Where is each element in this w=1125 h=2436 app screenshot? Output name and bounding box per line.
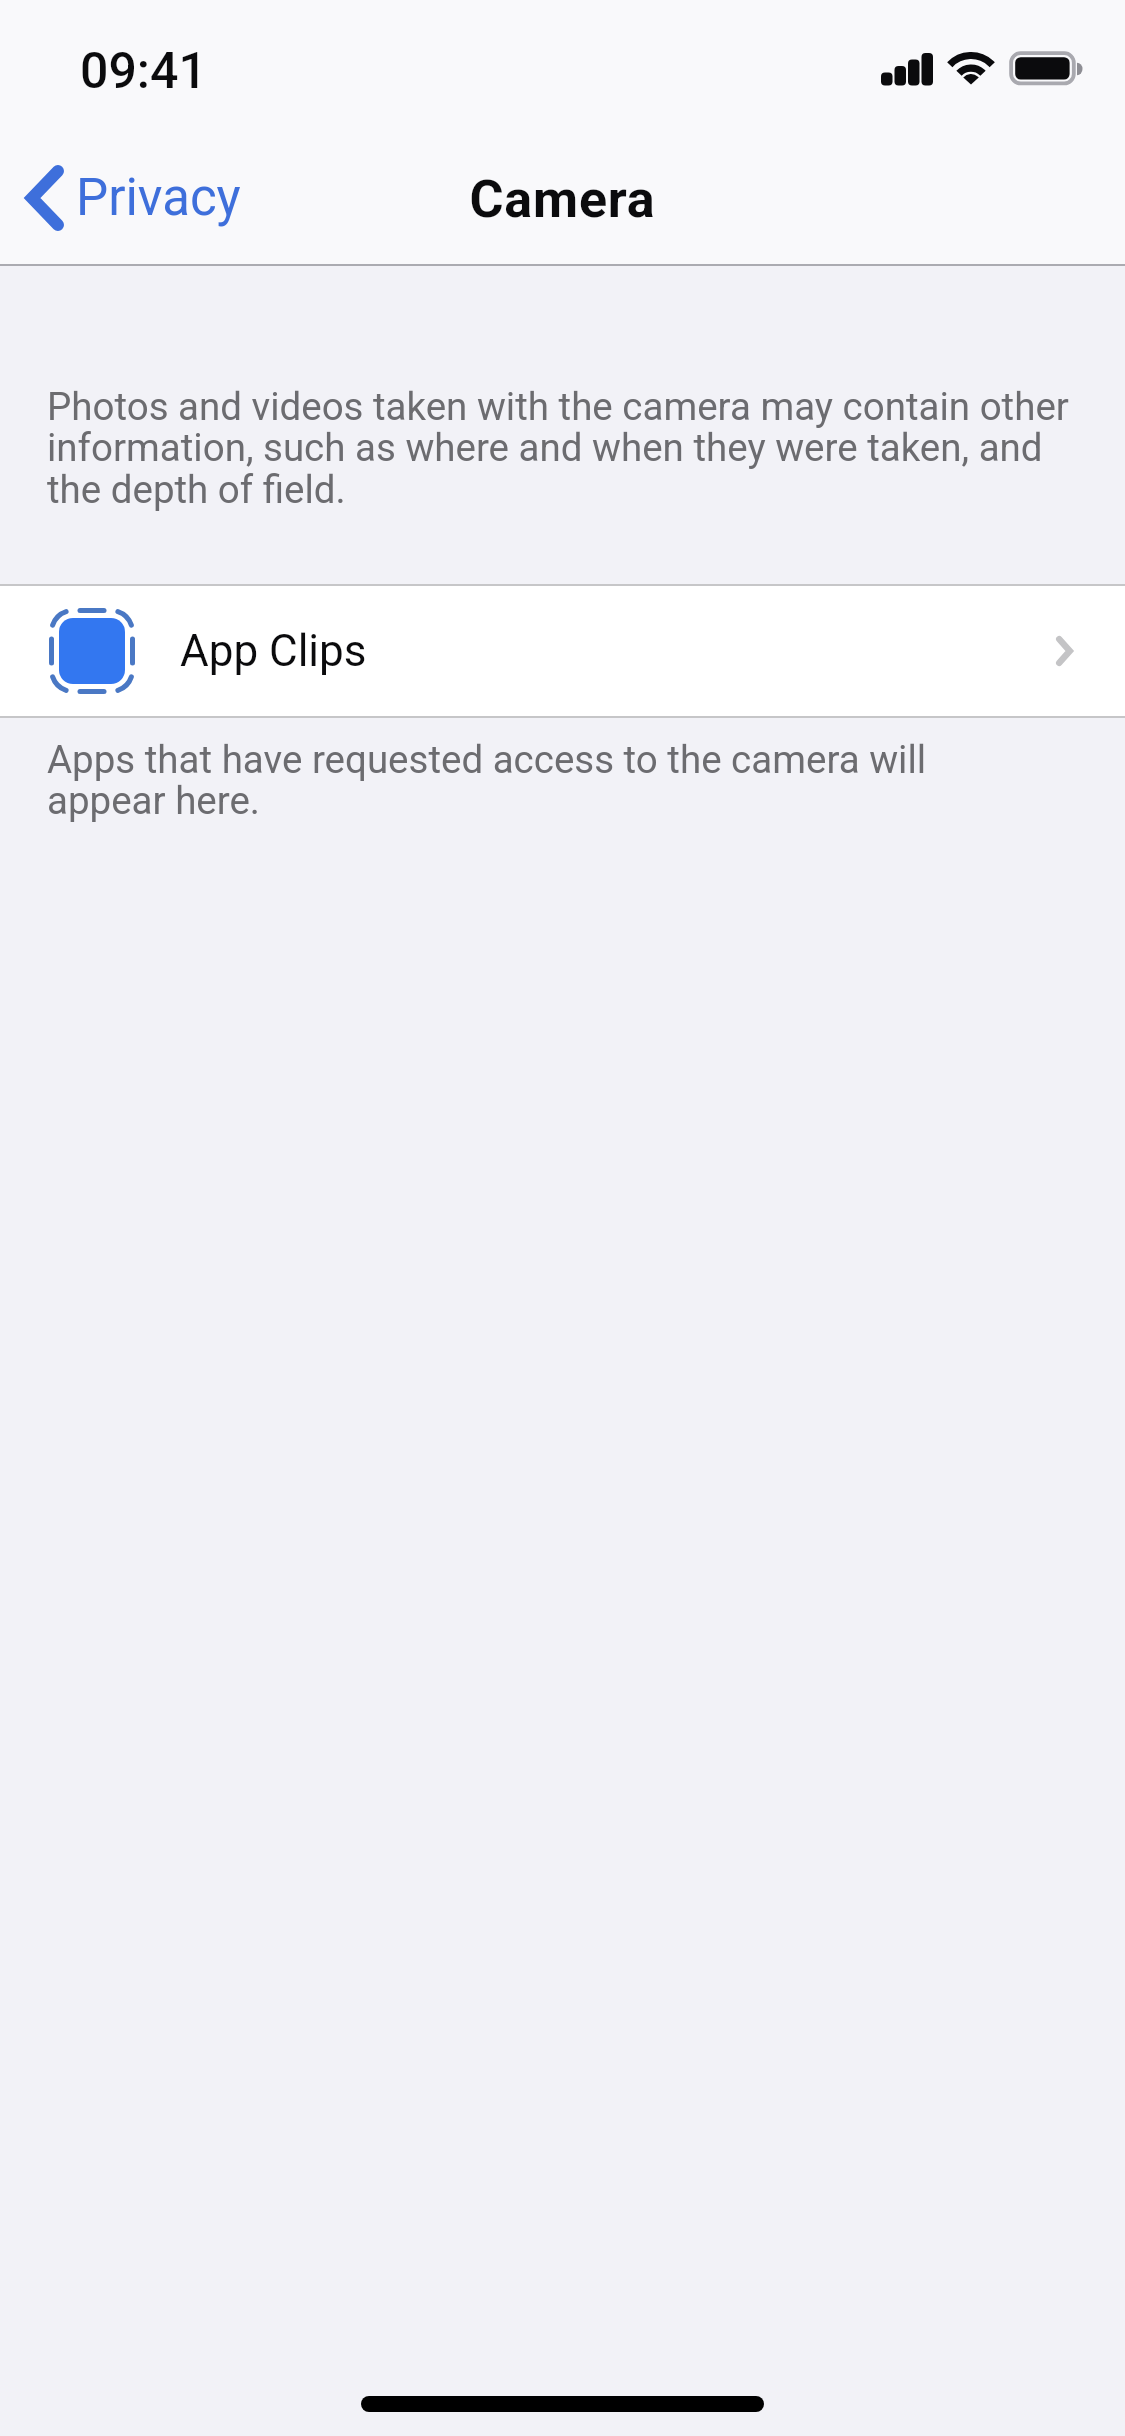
other: Open App Clips settings: [1056, 636, 1073, 666]
staticText: App Clips: [180, 625, 367, 677]
staticText: 09:41: [80, 42, 207, 101]
button[interactable]: Back to Privacy: [22, 146, 241, 250]
staticText: Apps that have requested access to the c…: [47, 737, 987, 823]
button[interactable]: App Clips: [0, 586, 1125, 716]
staticText: Privacy: [76, 168, 241, 228]
staticText: Photos and videos taken with the camera …: [47, 384, 1077, 512]
staticText: Camera: [469, 169, 656, 230]
other: Back to Privacy: [22, 165, 64, 231]
